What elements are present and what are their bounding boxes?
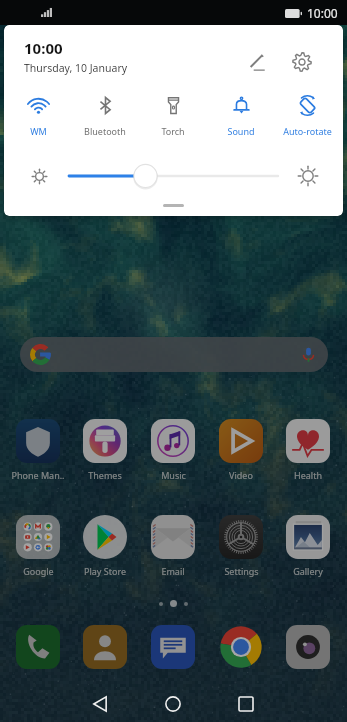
staticText: Video [229,469,253,481]
staticText: Play Store [84,565,126,577]
button[interactable]: Chrome [219,625,263,669]
button[interactable]: Torch [142,95,204,145]
button[interactable]: Phone Man.. [8,419,68,481]
staticText: Phone Man.. [11,469,65,481]
staticText: Email [161,565,185,577]
button[interactable]: Edit quick settings [240,45,274,79]
staticText: Music [161,469,186,481]
button[interactable]: Messages [151,625,195,669]
button[interactable]: Google [8,515,68,577]
staticText: Health [294,469,322,481]
button[interactable]: Email [143,515,203,577]
button[interactable]: WM [7,95,69,145]
button[interactable]: Bluetooth [74,95,136,145]
button[interactable]: Music [143,419,203,481]
staticText: WM [30,125,47,137]
button[interactable]: Settings [285,45,319,79]
button[interactable]: Brightness [57,163,290,189]
button[interactable]: Play Store [75,515,135,577]
button[interactable]: Contacts [83,625,127,669]
button[interactable]: Recent apps [224,686,268,722]
staticText: Torch [161,125,185,137]
staticText: 10:00 [24,38,63,58]
button[interactable]: Gallery [278,515,338,577]
staticText: Settings [224,565,259,577]
staticText: Bluetooth [84,125,126,137]
staticText: 10:00 [307,5,338,21]
staticText: Themes [88,469,122,481]
staticText: Auto-rotate [283,125,332,137]
button[interactable]: Home [151,686,195,722]
button[interactable]: Health [278,419,338,481]
button[interactable]: Auto-rotate [276,95,338,145]
button[interactable]: Phone [16,625,60,669]
button[interactable]: Google search [20,337,328,372]
staticText: Sound [227,125,255,137]
button[interactable]: Back [78,686,122,722]
button[interactable]: Settings [211,515,271,577]
button[interactable]: Sound [210,95,272,145]
button[interactable]: Themes [75,419,135,481]
staticText: Google [23,565,54,577]
button[interactable]: Camera [286,625,330,669]
staticText: Gallery [293,565,323,577]
staticText: Thursday, 10 January [24,61,128,75]
button[interactable]: Video [211,419,271,481]
